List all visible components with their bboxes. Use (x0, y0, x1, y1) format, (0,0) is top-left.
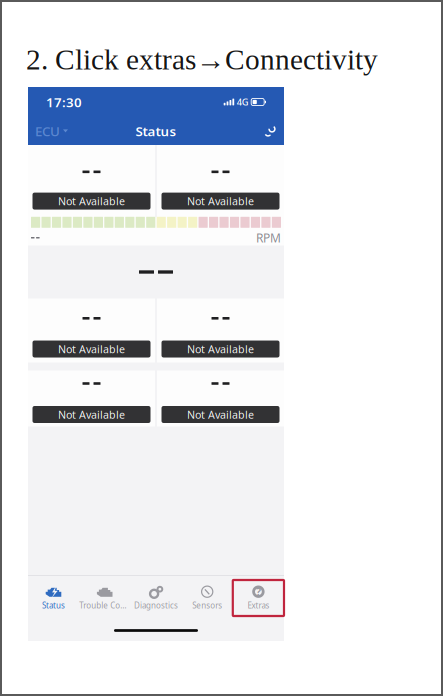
staticText: Status (42, 600, 65, 611)
button[interactable]: ? (233, 580, 284, 616)
button[interactable]: Diagnostics (130, 580, 182, 616)
staticText: ECU (35, 122, 60, 140)
button[interactable]: Trouble Codes (79, 580, 130, 616)
button[interactable]: ECU (35, 122, 68, 140)
staticText: ? (256, 585, 261, 599)
button[interactable]: Status (28, 580, 79, 616)
staticText: Status (135, 122, 176, 140)
staticText: Not Available (187, 342, 254, 356)
staticText: Extras (247, 600, 269, 611)
staticText: Sensors (192, 600, 222, 611)
staticText: Not Available (58, 342, 125, 356)
staticText: Trouble Codes (79, 600, 130, 611)
button[interactable]: Connectivity (263, 124, 277, 138)
staticText: Not Available (187, 194, 254, 208)
staticText: Diagnostics (134, 600, 178, 611)
staticText: 17:30 (46, 93, 82, 111)
staticText: RPM (256, 230, 281, 246)
button[interactable]: Sensors (182, 580, 233, 616)
staticText: Not Available (58, 194, 125, 208)
staticText: Not Available (58, 407, 125, 422)
staticText: Not Available (187, 407, 254, 422)
staticText: 2. Click extras→Connectivity (26, 43, 378, 76)
staticText: 4G (237, 96, 249, 108)
